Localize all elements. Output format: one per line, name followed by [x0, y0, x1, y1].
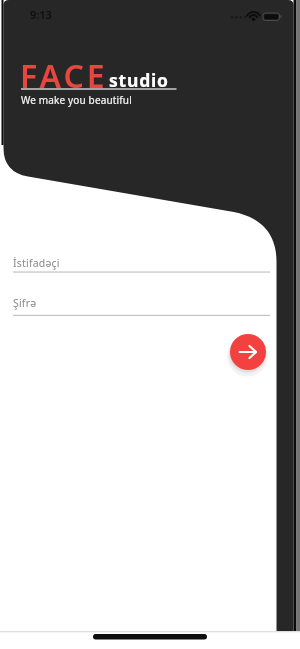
staticText: Şifrə [13, 296, 37, 310]
button[interactable] [230, 334, 266, 370]
button[interactable]: İstifadəçi [13, 256, 270, 273]
button[interactable]: Şifrə [13, 296, 270, 316]
staticText: FACE [20, 54, 108, 98]
staticText: We make you beautiful [21, 93, 132, 107]
staticText: studio [109, 68, 169, 92]
staticText: 9:13 [30, 7, 52, 22]
staticText: İstifadəçi [13, 256, 60, 270]
